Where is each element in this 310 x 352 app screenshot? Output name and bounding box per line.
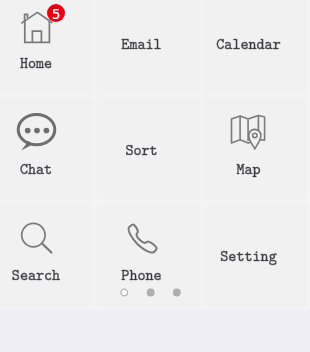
other: Phone	[126, 221, 162, 257]
staticText: Setting	[195, 245, 302, 265]
staticText: Map	[195, 158, 302, 178]
button[interactable]: Search	[0, 201, 95, 307]
staticText: Search	[0, 264, 89, 284]
staticText: 5	[47, 4, 65, 22]
other: Page indicator	[110, 283, 195, 302]
button[interactable]: Chat	[0, 95, 95, 201]
staticText: Phone	[88, 264, 195, 284]
other: Map	[229, 112, 269, 152]
staticText: Phone	[88, 264, 195, 284]
button[interactable]: Sort	[95, 95, 202, 201]
button[interactable]: Phone	[95, 201, 202, 307]
staticText: Email	[88, 33, 195, 53]
staticText: Home	[0, 52, 89, 72]
staticText: Sort	[88, 139, 195, 159]
button[interactable]: Email	[95, 0, 202, 95]
staticText: Search	[0, 264, 89, 284]
staticText: Home	[0, 52, 89, 72]
button[interactable]: Setting	[202, 201, 309, 307]
staticText: Calendar	[195, 33, 302, 53]
button[interactable]: Map	[202, 95, 309, 201]
staticText: Setting	[195, 245, 302, 265]
staticText: Chat	[0, 158, 89, 178]
staticText: Chat	[0, 158, 89, 178]
button[interactable]: Calendar	[202, 0, 309, 95]
staticText: Email	[88, 33, 195, 53]
staticText: Sort	[88, 139, 195, 159]
staticText: Map	[195, 158, 302, 178]
button[interactable]: Home	[0, 0, 95, 95]
other: Search	[19, 220, 55, 258]
other: 5 notifications	[47, 4, 65, 22]
staticText: Calendar	[195, 33, 302, 53]
other: Home	[21, 10, 55, 46]
other: Chat	[15, 109, 59, 153]
